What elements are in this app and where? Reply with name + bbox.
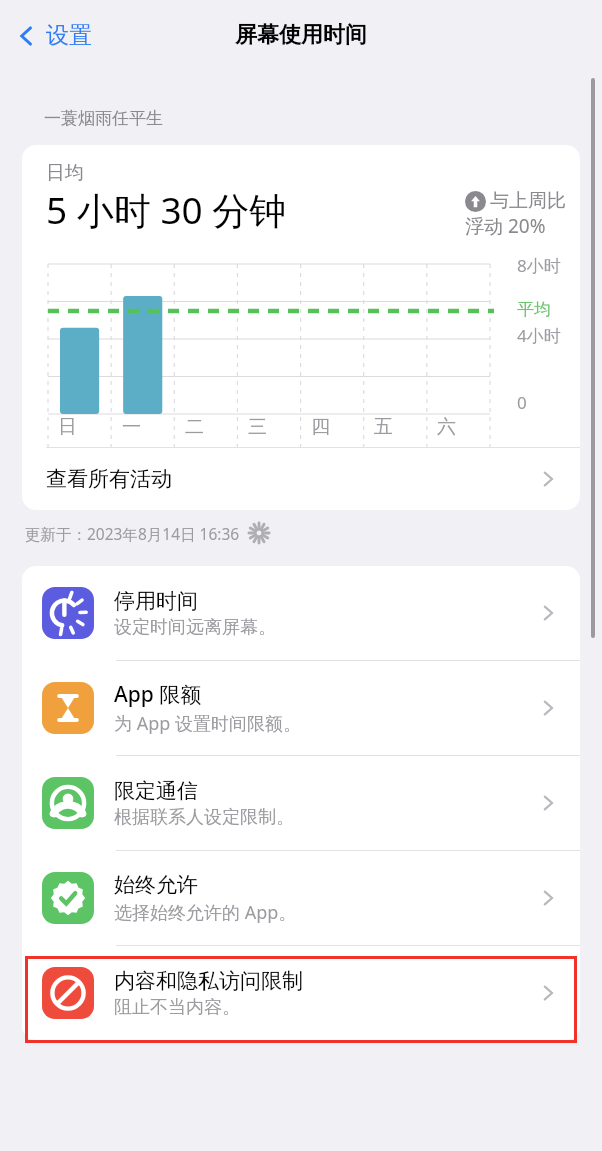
staticText: 浮动 20%: [465, 213, 546, 239]
button[interactable]: 内容和隐私访问限制: [22, 946, 580, 1040]
staticText: 六: [437, 415, 456, 439]
staticText: 始终允许: [114, 872, 198, 898]
staticText: 二: [185, 415, 204, 439]
staticText: 日: [58, 415, 77, 439]
staticText: 五: [374, 415, 393, 439]
staticText: 与上周比: [490, 189, 566, 213]
staticText: 4小时: [517, 324, 561, 347]
staticText: 设置: [46, 21, 92, 50]
staticText: 一: [122, 415, 141, 439]
staticText: 阻止不当内容。: [114, 996, 240, 1019]
staticText: 一蓑烟雨任平生: [44, 108, 163, 129]
other: Loading: [248, 522, 270, 544]
staticText: 查看所有活动: [46, 466, 172, 492]
button[interactable]: 设置: [10, 15, 98, 56]
staticText: App 限额: [114, 680, 202, 709]
button[interactable]: 停用时间: [22, 566, 580, 660]
staticText: 屏幕使用时间: [235, 21, 367, 49]
staticText: 设定时间远离屏幕。: [114, 616, 276, 639]
staticText: 0: [517, 391, 527, 414]
button[interactable]: 始终允许: [22, 851, 580, 945]
staticText: 为 App 设置时间限额。: [114, 711, 302, 736]
staticText: 更新于：2023年8月14日 16:36: [25, 523, 240, 544]
staticText: 日均: [46, 161, 84, 185]
staticText: 根据联系人设定限制。: [114, 806, 294, 829]
button[interactable]: 查看所有活动: [22, 448, 580, 510]
staticText: 8小时: [517, 254, 561, 277]
staticText: 停用时间: [114, 588, 198, 614]
staticText: 选择始终允许的 App。: [114, 900, 297, 925]
staticText: 限定通信: [114, 778, 198, 804]
staticText: 内容和隐私访问限制: [114, 968, 303, 994]
button[interactable]: App 限额: [22, 661, 580, 755]
staticText: 三: [248, 415, 267, 439]
staticText: 平均: [517, 299, 551, 320]
button[interactable]: 限定通信: [22, 756, 580, 850]
staticText: 5 小时 30 分钟: [46, 184, 287, 235]
staticText: 四: [311, 415, 330, 439]
